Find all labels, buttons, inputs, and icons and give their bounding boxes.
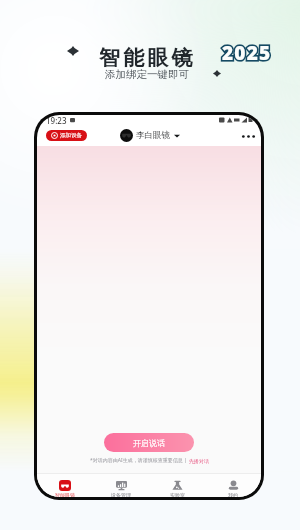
staticText: 开启说话 [133, 438, 165, 448]
button[interactable]: 我的 [205, 474, 261, 497]
staticText: 智能眼镜 [99, 45, 196, 71]
button[interactable]: 李白眼镜 [120, 129, 180, 142]
button[interactable]: 添加设备 [46, 130, 87, 141]
button[interactable]: 智能眼镜 [37, 474, 93, 497]
button[interactable]: 实验室 [149, 474, 205, 497]
staticText: 李白眼镜 [136, 130, 170, 141]
staticText: 智能眼镜 [55, 492, 75, 497]
staticText: 2025 [222, 40, 272, 66]
staticText: *对话内容由AI生成，请谨慎核查重要信息 | [90, 457, 189, 464]
staticText: 实验室 [170, 492, 185, 497]
staticText: 设备管理 [111, 492, 131, 497]
button[interactable]: 先播对话 [189, 458, 209, 464]
staticText: 添加设备 [60, 132, 82, 139]
staticText: 添加绑定一键即可 [105, 68, 189, 81]
button[interactable]: 开启说话 [104, 433, 194, 452]
staticText: 2025 [222, 40, 272, 66]
staticText: 19:23 [46, 115, 67, 125]
button[interactable]: 设备管理 [93, 474, 149, 497]
staticText: 我的 [228, 492, 238, 497]
button[interactable]: More options [239, 127, 257, 145]
